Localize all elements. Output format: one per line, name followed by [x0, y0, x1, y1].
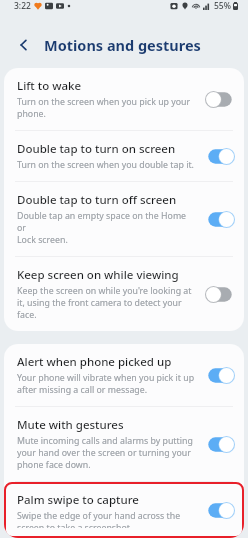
button[interactable]: On [205, 367, 235, 384]
button[interactable]: Alert when phone picked up [4, 344, 244, 406]
button[interactable]: On [205, 148, 235, 165]
button[interactable]: Back [13, 34, 35, 56]
staticText: Lift to wake [17, 78, 82, 94]
button[interactable]: On [205, 436, 235, 453]
button[interactable]: Mute with gestures [4, 407, 244, 481]
button[interactable]: Double tap to turn on screen [4, 131, 244, 181]
staticText: Double tap to turn off screen [17, 192, 177, 208]
staticText: Palm swipe to capture [17, 492, 139, 508]
button[interactable]: Keep screen on while viewing [4, 257, 244, 331]
staticText: Double tap to turn on screen [17, 141, 176, 157]
staticText: Your phone will vibrate when you pick it… [17, 372, 195, 396]
staticText: Motions and gestures [44, 35, 201, 55]
staticText: Turn on the screen when you double tap i… [17, 159, 194, 171]
staticText: Double tap an empty space on the Home or… [17, 210, 197, 246]
button[interactable]: On [205, 211, 235, 228]
staticText: 55% [214, 0, 231, 12]
staticText: Mute incoming calls and alarms by puttin… [17, 435, 193, 471]
button[interactable]: Lift to wake [4, 68, 244, 130]
staticText: Alert when phone picked up [17, 354, 172, 370]
button[interactable]: Double tap to turn off screen [4, 182, 244, 256]
staticText: Mute with gestures [17, 417, 124, 433]
staticText: Keep the screen on while you're looking … [17, 285, 192, 321]
button[interactable]: Palm swipe to capture [4, 482, 244, 538]
staticText: 3:22 [14, 0, 31, 12]
button[interactable]: Off [205, 286, 235, 303]
staticText: Keep screen on while viewing [17, 267, 179, 283]
button[interactable]: On [205, 502, 235, 519]
staticText: Swipe the edge of your hand across the s… [17, 510, 181, 528]
staticText: Turn on the screen when you pick up your… [17, 96, 191, 120]
button[interactable]: Off [205, 91, 235, 108]
